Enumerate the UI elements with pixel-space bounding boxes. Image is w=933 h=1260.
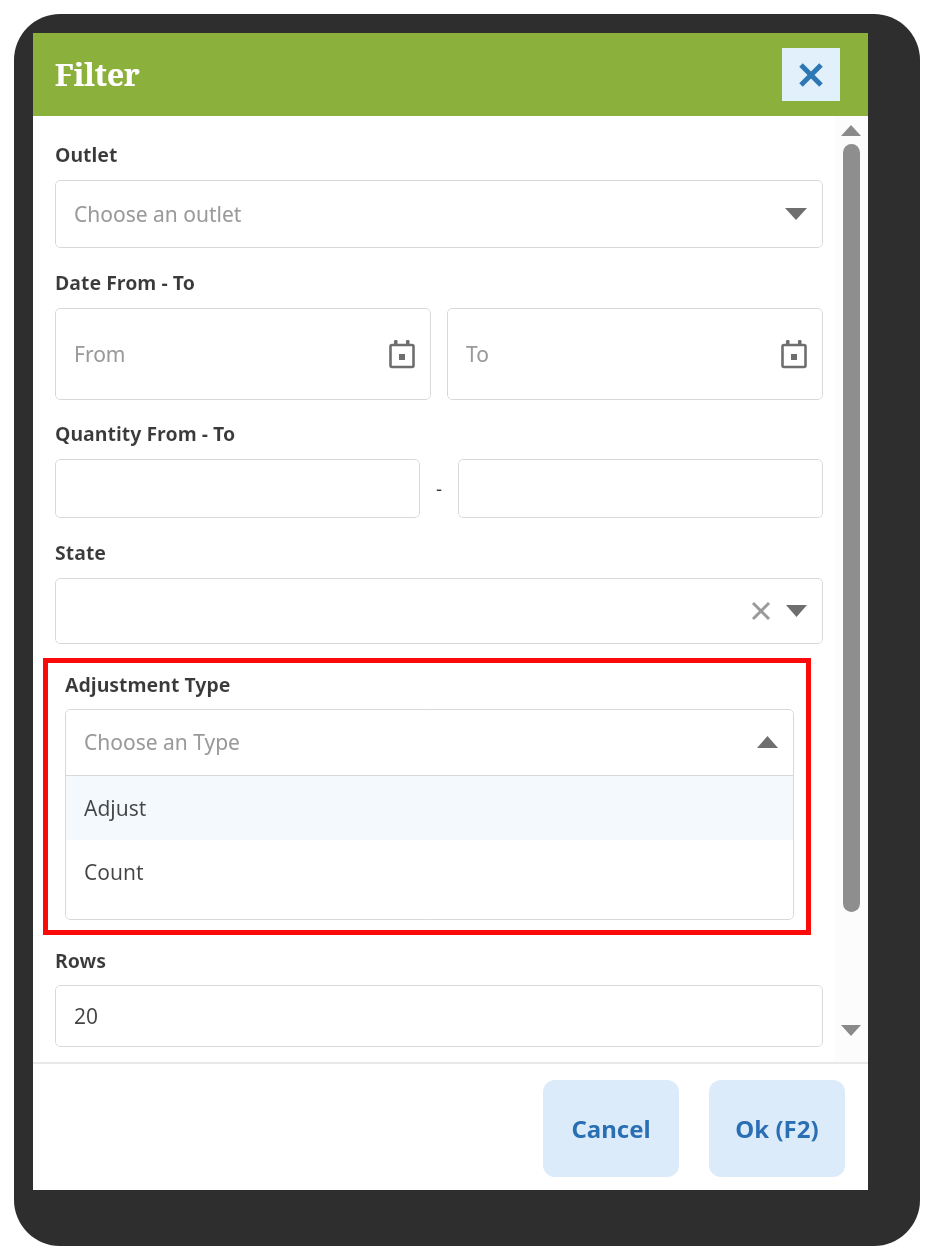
staticText: Adjustment Type [65,671,231,698]
staticText: Choose an outlet [74,200,242,229]
button[interactable]: Scroll down [841,1025,861,1036]
button[interactable]: Cancel [543,1080,679,1177]
staticText: Cancel [571,1112,651,1145]
button[interactable]: Count [65,840,794,904]
staticText: To [466,340,489,369]
button[interactable]: From [55,308,431,400]
button[interactable] [458,459,823,518]
staticText: State [55,539,106,566]
staticText: Adjust [84,794,147,823]
staticText: From [74,340,126,369]
button[interactable]: Scroll thumb [843,144,860,912]
staticText: Count [84,858,144,887]
staticText: 20 [74,1002,99,1031]
button[interactable]: Choose an outlet [55,180,823,248]
button[interactable]: Clear state [55,578,823,644]
button[interactable]: Adjust [65,776,794,840]
staticText: - [436,476,443,502]
button[interactable]: 20 [55,985,823,1047]
staticText: Quantity From - To [55,420,236,447]
button[interactable]: Choose an Type [65,709,794,775]
button[interactable]: To [447,308,823,400]
button[interactable]: Clear state [746,596,776,626]
staticText: Date From - To [55,269,195,296]
button[interactable]: Ok (F2) [709,1080,845,1177]
staticText: Choose an Type [84,728,757,757]
staticText: Rows [55,947,107,974]
staticText: Outlet [55,141,118,168]
staticText: Filter [55,54,140,95]
button[interactable]: Scroll up [841,125,861,136]
button[interactable] [55,459,420,518]
button[interactable]: Close [782,48,840,101]
staticText: Ok (F2) [735,1112,819,1145]
